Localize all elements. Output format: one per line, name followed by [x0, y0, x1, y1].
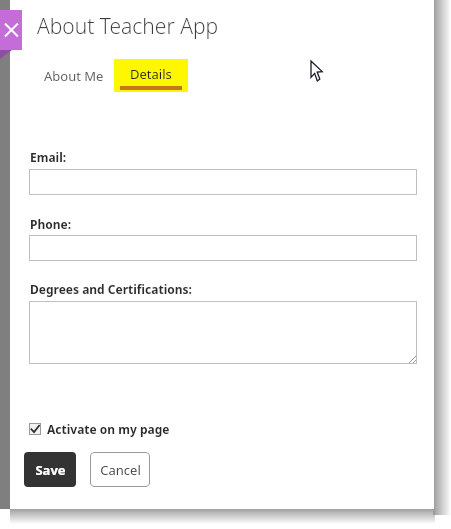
button[interactable]: About Me — [34, 60, 114, 92]
staticText: Details — [130, 65, 172, 83]
staticText: Cancel — [100, 461, 141, 479]
button[interactable]: Activate on my page — [29, 421, 170, 437]
staticText: About Teacher App — [37, 12, 219, 41]
staticText: Save — [35, 461, 66, 479]
staticText: About Me — [44, 67, 104, 85]
button[interactable]: Save — [24, 452, 76, 487]
staticText: Email: — [30, 149, 67, 165]
staticText: Phone: — [30, 216, 72, 232]
button[interactable] — [29, 169, 417, 195]
staticText: Activate on my page — [47, 421, 170, 437]
button[interactable]: Details — [114, 59, 188, 92]
button[interactable]: Cancel — [90, 452, 150, 487]
button[interactable] — [29, 301, 417, 364]
button[interactable] — [29, 235, 417, 261]
staticText: Degrees and Certifications: — [30, 281, 192, 297]
button[interactable]: Close — [0, 10, 22, 50]
